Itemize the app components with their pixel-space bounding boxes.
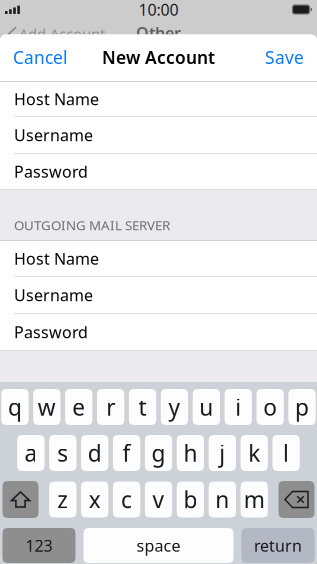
staticText: s — [57, 438, 68, 468]
button[interactable]: Host Name — [0, 82, 317, 117]
button[interactable]: Username — [0, 277, 317, 314]
staticText: return — [254, 535, 302, 556]
staticText: a — [24, 438, 37, 468]
staticText: y — [168, 392, 180, 422]
button[interactable]: m — [240, 481, 268, 517]
button[interactable]: y — [161, 389, 188, 425]
button[interactable]: h — [177, 435, 204, 471]
button[interactable]: w — [33, 389, 60, 425]
staticText: n — [215, 484, 229, 514]
button[interactable]: 123 — [2, 528, 75, 563]
button[interactable]: s — [49, 435, 76, 471]
staticText: q — [8, 392, 22, 422]
staticText: x — [89, 484, 101, 514]
button[interactable]: Password — [0, 314, 317, 350]
staticText: b — [183, 484, 197, 514]
staticText: Password — [14, 321, 88, 343]
staticText: New Account — [102, 46, 215, 69]
staticText: Password — [14, 161, 88, 182]
staticText: Save — [265, 46, 304, 69]
button[interactable]: c — [113, 481, 140, 517]
staticText: l — [283, 438, 289, 468]
button[interactable]: Username — [0, 117, 317, 154]
button[interactable]: Password — [0, 154, 317, 189]
button[interactable]: a — [17, 435, 44, 471]
staticText: d — [88, 438, 102, 468]
button[interactable]: f — [113, 435, 140, 471]
staticText: Host Name — [14, 88, 99, 110]
staticText: space — [136, 535, 180, 556]
button[interactable]: q — [1, 389, 29, 425]
staticText: c — [121, 484, 132, 514]
button[interactable]: k — [240, 435, 268, 471]
button[interactable]: Delete — [278, 481, 314, 518]
button[interactable]: Cancel — [0, 35, 80, 79]
staticText: e — [72, 392, 85, 422]
staticText: k — [248, 438, 260, 468]
button[interactable]: l — [272, 435, 300, 471]
staticText: p — [295, 392, 309, 422]
staticText: v — [152, 484, 164, 514]
button[interactable]: i — [225, 389, 252, 425]
button[interactable]: d — [81, 435, 108, 471]
staticText: j — [219, 438, 225, 468]
button[interactable]: z — [49, 481, 76, 517]
staticText: g — [151, 438, 165, 468]
staticText: z — [57, 484, 68, 514]
button[interactable]: Host Name — [0, 241, 317, 277]
button[interactable]: j — [209, 435, 236, 471]
staticText: Username — [14, 124, 93, 146]
staticText: h — [183, 438, 197, 468]
staticText: OUTGOING MAIL SERVER — [14, 216, 170, 234]
button[interactable]: u — [193, 389, 220, 425]
staticText: t — [138, 392, 146, 422]
button[interactable]: n — [209, 481, 236, 517]
staticText: w — [38, 392, 56, 422]
staticText: Add Account — [19, 24, 105, 43]
staticText: Other — [136, 22, 181, 43]
button[interactable]: g — [145, 435, 172, 471]
button[interactable]: x — [81, 481, 108, 517]
button[interactable]: Save — [252, 35, 317, 79]
button[interactable]: b — [177, 481, 204, 517]
button[interactable]: Shift — [2, 481, 38, 518]
staticText: u — [199, 392, 213, 422]
button[interactable]: space — [83, 528, 233, 563]
staticText: 123 — [25, 535, 52, 556]
button[interactable]: r — [97, 389, 124, 425]
button[interactable]: o — [256, 389, 284, 425]
staticText: r — [106, 392, 115, 422]
staticText: Cancel — [13, 46, 67, 69]
staticText: Host Name — [14, 248, 99, 269]
button[interactable]: return — [241, 528, 314, 563]
staticText: 10:00 — [138, 0, 178, 20]
staticText: i — [235, 392, 241, 422]
button[interactable]: v — [145, 481, 172, 517]
staticText: Username — [14, 284, 93, 306]
staticText: m — [244, 484, 265, 514]
staticText: f — [123, 438, 131, 468]
button[interactable]: t — [129, 389, 156, 425]
staticText: o — [263, 392, 277, 422]
button[interactable]: p — [288, 389, 316, 425]
button[interactable]: e — [65, 389, 92, 425]
